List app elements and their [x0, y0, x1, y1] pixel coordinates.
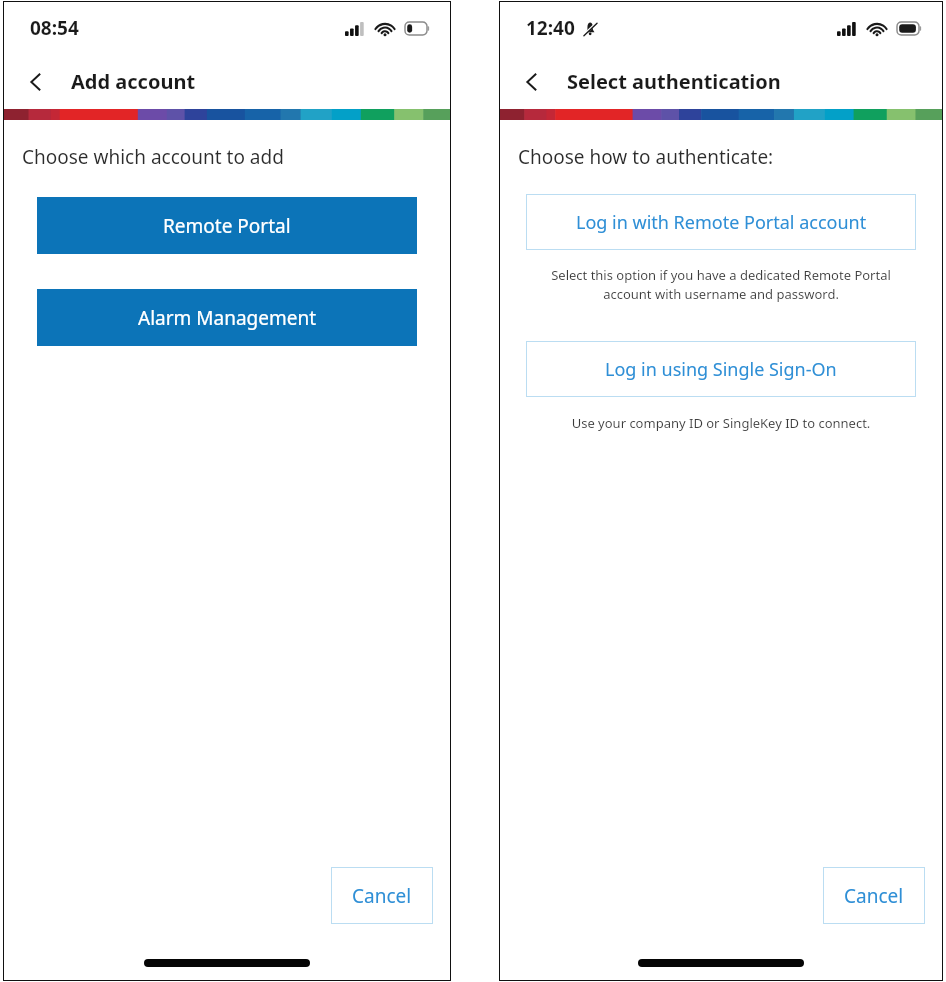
button[interactable]: Cancel — [331, 867, 433, 924]
staticText: 12:40 — [526, 15, 575, 41]
button[interactable]: Alarm Management — [37, 289, 417, 346]
staticText: Add account — [71, 68, 196, 95]
button[interactable]: Log in using Single Sign-On — [526, 341, 916, 397]
staticText: Select authentication — [567, 68, 781, 95]
staticText: Use your company ID or SingleKey ID to c… — [526, 414, 916, 432]
staticText: Alarm Management — [138, 305, 317, 331]
button[interactable]: Back — [510, 60, 554, 104]
staticText: Choose which account to add — [22, 144, 284, 170]
button[interactable]: Log in with Remote Portal account — [526, 194, 916, 250]
staticText: 08:54 — [30, 15, 79, 41]
button[interactable]: Remote Portal — [37, 197, 417, 254]
staticText: Cancel — [352, 883, 412, 909]
staticText: Cancel — [844, 883, 904, 909]
button[interactable]: Cancel — [823, 867, 925, 924]
staticText: Log in with Remote Portal account — [576, 210, 867, 235]
button[interactable]: Back — [14, 60, 58, 104]
staticText: Select this option if you have a dedicat… — [530, 266, 912, 303]
staticText: Remote Portal — [163, 213, 291, 239]
staticText: Choose how to authenticate: — [518, 144, 774, 170]
staticText: Log in using Single Sign-On — [605, 357, 837, 382]
